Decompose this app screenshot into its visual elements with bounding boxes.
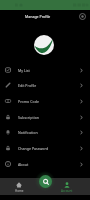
- button[interactable]: About: [0, 156, 90, 172]
- button[interactable]: Search: [39, 175, 52, 188]
- staticText: Change Password: [18, 146, 49, 151]
- button[interactable]: Change Password: [0, 140, 90, 156]
- button[interactable]: Edit Profile: [0, 77, 90, 93]
- button[interactable]: Notification: [0, 124, 90, 140]
- staticText: Subscription: [18, 115, 40, 120]
- button[interactable]: My List: [0, 62, 90, 78]
- staticText: Account: [61, 189, 73, 193]
- button[interactable]: Subscription: [0, 109, 90, 125]
- button[interactable]: Profile photo: [34, 35, 54, 55]
- staticText: My List: [18, 68, 30, 73]
- staticText: Home: [15, 189, 24, 193]
- button[interactable]: Promo Code: [0, 93, 90, 109]
- staticText: Manage Profile: [25, 14, 51, 19]
- button[interactable]: Home: [8, 182, 30, 198]
- staticText: About: [18, 162, 29, 167]
- staticText: Edit Profile: [18, 83, 37, 88]
- staticText: Promo Code: [18, 99, 39, 104]
- button[interactable]: Account: [56, 182, 78, 198]
- staticText: Notification: [18, 130, 38, 135]
- button[interactable]: Account settings: [78, 12, 87, 21]
